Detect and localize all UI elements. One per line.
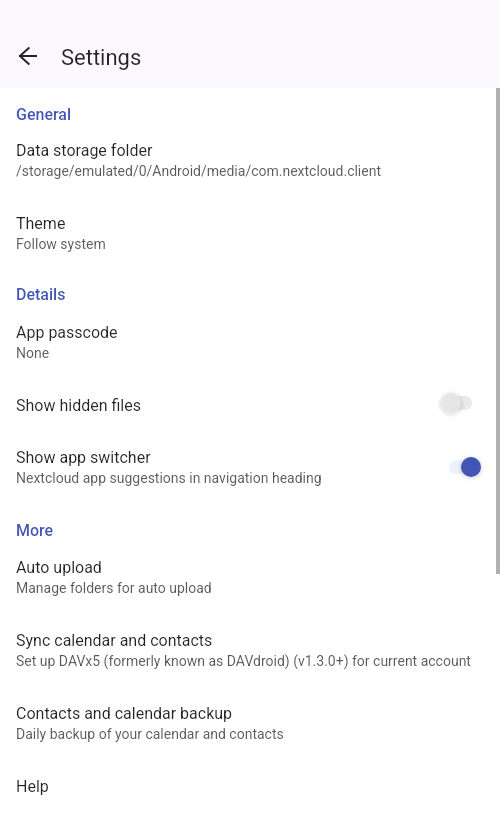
staticText: Contacts and calendar backup [16,704,233,723]
button[interactable]: Contacts and calendar backup [0,688,500,761]
button[interactable]: Back [8,36,48,76]
staticText: Show hidden files [16,396,141,415]
button[interactable]: Sync calendar and contacts [0,615,500,688]
button[interactable]: Theme [0,198,500,271]
staticText: App passcode [16,323,118,342]
staticText: Help [16,777,49,796]
staticText: Data storage folder [16,141,153,160]
button[interactable]: App passcode [0,307,500,380]
staticText: Settings [61,45,142,71]
button[interactable]: Auto upload [0,542,500,615]
staticText: Details [16,285,66,304]
staticText: /storage/emulated/0/Android/media/com.ne… [16,163,382,179]
staticText: Daily backup of your calendar and contac… [16,726,284,742]
staticText: Follow system [16,236,106,252]
button[interactable]: Data storage folder [0,125,500,198]
staticText: General [16,105,72,124]
staticText: Sync calendar and contacts [16,631,213,650]
button[interactable]: Help [0,761,500,833]
staticText: Theme [16,214,66,233]
button[interactable]: Show app switcher [0,433,500,506]
staticText: None [16,345,50,361]
staticText: Nextcloud app suggestions in navigation … [16,470,322,486]
staticText: Auto upload [16,558,102,577]
staticText: More [16,521,54,540]
staticText: Show app switcher [16,448,151,467]
staticText: Set up DAVx5 (formerly known as DAVdroid… [16,653,471,669]
button[interactable]: Show hidden files [0,380,500,433]
staticText: Manage folders for auto upload [16,580,212,596]
